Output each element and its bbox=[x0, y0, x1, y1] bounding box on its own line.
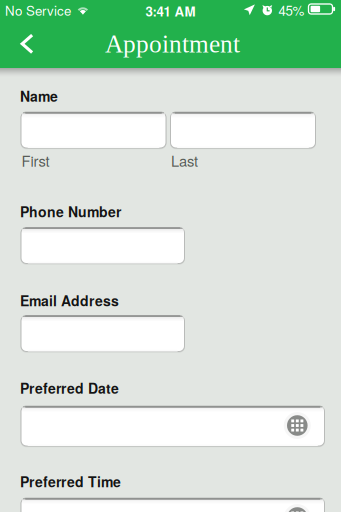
button[interactable]: Choose time bbox=[280, 497, 314, 512]
staticText: Appointment bbox=[105, 30, 240, 58]
button[interactable]: First name bbox=[21, 112, 166, 148]
staticText: Email Address bbox=[20, 290, 119, 310]
button[interactable]: Back bbox=[5, 20, 49, 68]
staticText: 45% bbox=[278, 0, 304, 20]
staticText: Preferred Date bbox=[20, 378, 119, 398]
staticText: Last bbox=[171, 150, 198, 171]
staticText: Phone Number bbox=[20, 201, 121, 221]
staticText: 3:41 AM bbox=[145, 1, 195, 21]
button[interactable]: Last name bbox=[170, 112, 315, 148]
button[interactable]: Email Address bbox=[21, 315, 184, 351]
staticText: Name bbox=[20, 86, 58, 106]
button[interactable]: Choose date bbox=[280, 405, 314, 445]
staticText: No Service bbox=[5, 0, 71, 20]
button[interactable]: Phone Number bbox=[21, 227, 184, 263]
staticText: First bbox=[21, 150, 49, 171]
staticText: Preferred Time bbox=[20, 471, 121, 491]
